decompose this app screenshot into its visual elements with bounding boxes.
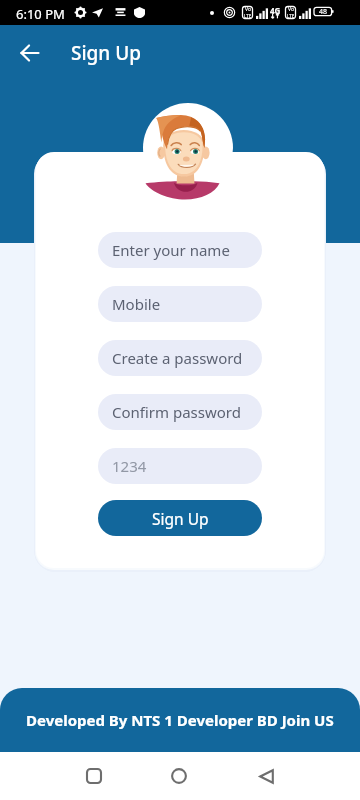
staticText: 6:10 PM (16, 5, 65, 23)
button[interactable]: Back (244, 754, 288, 798)
staticText: Vo (288, 6, 294, 13)
staticText: Enter your name (112, 240, 230, 260)
button[interactable]: Enter your name (98, 232, 262, 268)
staticText: LTE (244, 13, 252, 19)
button[interactable]: Mobile (98, 286, 262, 322)
staticText: Sign Up (152, 508, 209, 529)
button[interactable]: Back (10, 33, 50, 73)
staticText: Developed By NTS 1 Developer BD Join US (26, 710, 334, 730)
button[interactable]: Recent apps (72, 754, 116, 798)
button[interactable]: Create a password (98, 340, 262, 376)
button[interactable]: Home (157, 754, 201, 798)
staticText: Vo (245, 6, 251, 13)
button[interactable]: Sign Up (98, 500, 262, 536)
staticText: 1234 (112, 456, 147, 476)
staticText: 4G (270, 5, 281, 16)
button[interactable]: Confirm password (98, 394, 262, 430)
staticText: Confirm password (112, 402, 241, 422)
staticText: Sign Up (71, 40, 142, 66)
staticText: Create a password (112, 348, 243, 368)
staticText: Mobile (112, 294, 161, 314)
staticText: 48 (319, 7, 328, 17)
button[interactable]: 1234 (98, 448, 262, 484)
button[interactable]: Developed By NTS 1 Developer BD Join US (0, 688, 360, 752)
staticText: LTE (287, 13, 295, 19)
